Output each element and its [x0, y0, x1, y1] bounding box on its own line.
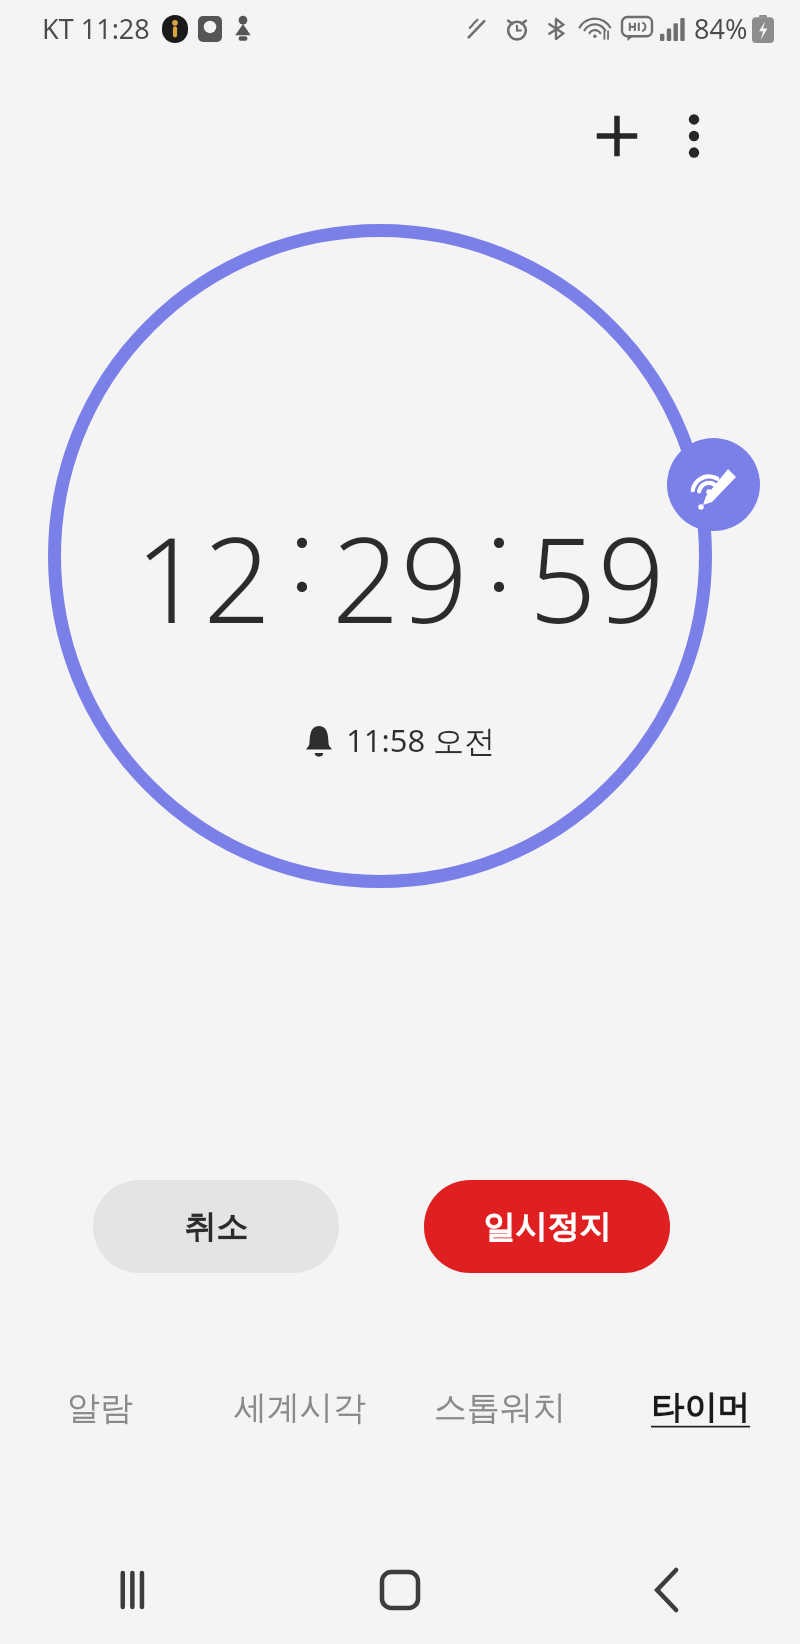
- button[interactable]: 스톱워치: [400, 1372, 600, 1444]
- button[interactable]: 홈: [266, 1536, 533, 1644]
- button[interactable]: 더보기: [648, 90, 740, 182]
- button[interactable]: 세계시각: [200, 1372, 400, 1444]
- staticText: 알람: [67, 1387, 133, 1429]
- button[interactable]: 뒤로: [533, 1536, 800, 1644]
- staticText: KT 11:28: [42, 10, 150, 47]
- staticText: 세계시각: [234, 1387, 366, 1429]
- button[interactable]: 타이머: [600, 1372, 800, 1444]
- staticText: 취소: [184, 1207, 248, 1247]
- staticText: 84%: [694, 10, 748, 47]
- staticText: 타이머: [651, 1387, 750, 1429]
- staticText: 59: [529, 497, 666, 627]
- button[interactable]: 알람: [0, 1372, 200, 1444]
- button[interactable]: 일시정지: [424, 1180, 670, 1273]
- staticText: 12: [135, 497, 272, 627]
- staticText: 29: [332, 497, 469, 627]
- button[interactable]: 취소: [93, 1180, 339, 1273]
- button[interactable]: 시간 편집: [667, 438, 760, 531]
- staticText: 일시정지: [483, 1207, 611, 1247]
- staticText: 11:58 오전: [346, 719, 496, 761]
- button[interactable]: 최근 앱: [0, 1536, 266, 1644]
- button[interactable]: 타이머 추가: [569, 88, 665, 184]
- staticText: 스톱워치: [434, 1387, 566, 1429]
